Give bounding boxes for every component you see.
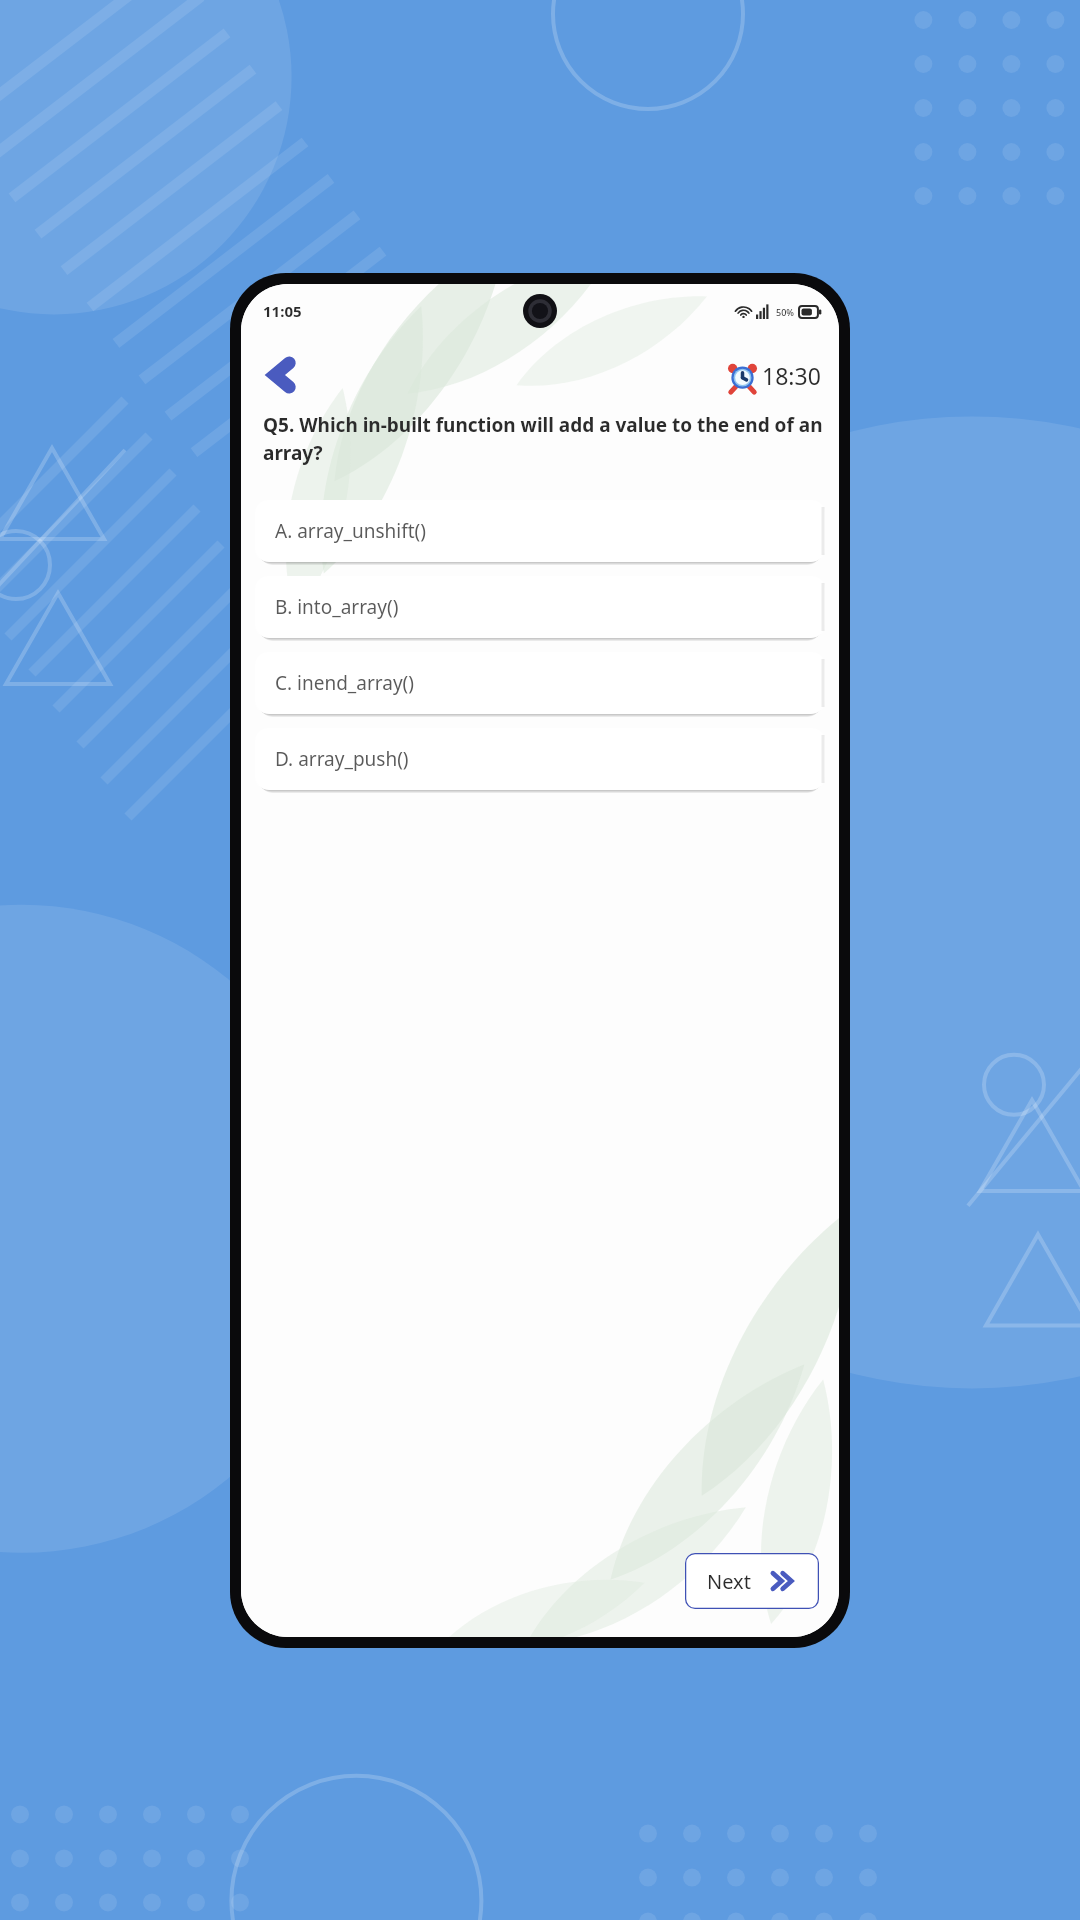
button[interactable]: A. array_unshift()	[255, 500, 825, 562]
staticText: 11:05	[263, 301, 302, 321]
button[interactable]: C. inend_array()	[255, 652, 825, 714]
staticText: 50%	[776, 306, 794, 318]
button[interactable]: B. into_array()	[255, 576, 825, 638]
staticText: A. array_unshift()	[275, 518, 426, 544]
button[interactable]: D. array_push()	[255, 728, 825, 790]
staticText: Q5. Which in-built function will add a v…	[263, 412, 825, 466]
button[interactable]: 18:30	[723, 356, 825, 395]
staticText: B. into_array()	[275, 594, 399, 620]
staticText: Next	[707, 1568, 751, 1595]
button[interactable]: Next	[685, 1553, 819, 1609]
button[interactable]: Back	[255, 348, 309, 402]
staticText: D. array_push()	[275, 746, 409, 772]
staticText: C. inend_array()	[275, 670, 414, 696]
staticText: 18:30	[762, 360, 821, 391]
